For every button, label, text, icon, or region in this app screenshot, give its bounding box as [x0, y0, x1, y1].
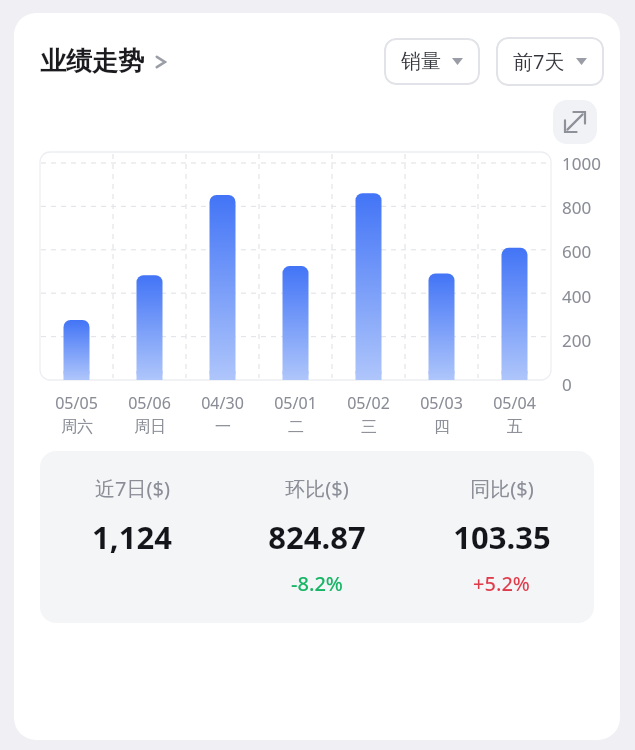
- staticText: +5.2%: [473, 570, 530, 597]
- staticText: 05/03: [420, 392, 463, 414]
- staticText: 05/05: [55, 392, 98, 414]
- staticText: 近7日($): [95, 475, 170, 502]
- staticText: -8.2%: [291, 570, 343, 597]
- staticText: 04/30: [201, 392, 244, 414]
- button[interactable]: 前7天: [496, 37, 604, 86]
- staticText: 05/06: [128, 392, 171, 414]
- staticText: 200: [562, 329, 592, 352]
- staticText: 103.35: [453, 516, 551, 558]
- staticText: 一: [215, 417, 231, 437]
- staticText: 05/01: [274, 392, 317, 414]
- staticText: 周六: [61, 417, 93, 437]
- staticText: 业绩走势: [40, 45, 144, 78]
- button[interactable]: 业绩走势: [40, 45, 168, 78]
- staticText: 05/02: [347, 392, 390, 414]
- staticText: 前7天: [513, 48, 565, 75]
- staticText: 1,124: [92, 516, 172, 558]
- button[interactable]: 销量: [384, 38, 480, 85]
- button[interactable]: 近7日($): [40, 475, 224, 558]
- button[interactable]: 环比($): [224, 475, 409, 597]
- staticText: 同比($): [470, 475, 534, 502]
- staticText: 二: [288, 417, 304, 437]
- staticText: 销量: [401, 49, 441, 74]
- staticText: 600: [562, 240, 592, 263]
- staticText: 1000: [562, 152, 601, 175]
- button[interactable]: Expand chart: [553, 100, 597, 144]
- staticText: 05/04: [493, 392, 536, 414]
- button[interactable]: 同比($): [409, 475, 594, 597]
- staticText: 800: [562, 196, 592, 219]
- staticText: 824.87: [268, 516, 366, 558]
- staticText: 环比($): [285, 475, 349, 502]
- staticText: 三: [361, 417, 377, 437]
- staticText: 五: [507, 417, 523, 437]
- staticText: 400: [562, 285, 592, 308]
- staticText: 四: [434, 417, 450, 437]
- staticText: 周日: [134, 417, 166, 437]
- staticText: 0: [562, 373, 572, 396]
